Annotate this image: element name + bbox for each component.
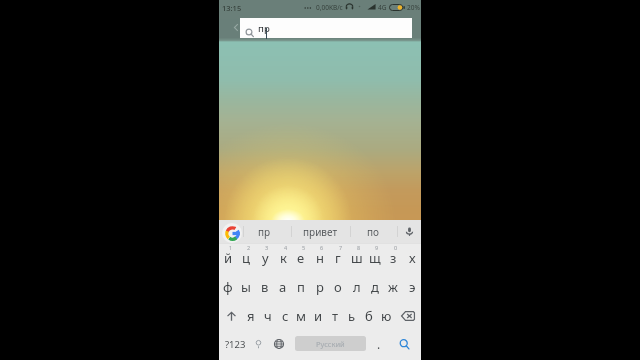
staticText: р: [316, 278, 324, 296]
staticText: к: [280, 249, 287, 267]
button[interactable]: й: [219, 245, 237, 271]
button[interactable]: о: [329, 274, 347, 300]
staticText: ц: [242, 249, 250, 267]
staticText: т: [332, 307, 339, 325]
button[interactable]: ч: [259, 303, 277, 329]
button[interactable]: Shift: [221, 303, 241, 329]
staticText: в: [261, 278, 269, 296]
button[interactable]: ь: [343, 303, 361, 329]
button[interactable]: р: [311, 274, 329, 300]
staticText: привет: [303, 225, 338, 239]
button[interactable]: пр: [244, 220, 284, 244]
button[interactable]: Русский: [295, 336, 366, 351]
staticText: по: [367, 225, 379, 239]
button[interactable]: Voice input: [402, 224, 417, 239]
staticText: 1: [229, 244, 233, 251]
staticText: пр: [258, 22, 270, 35]
button[interactable]: ц: [237, 245, 255, 271]
button[interactable]: г: [329, 245, 347, 271]
button[interactable]: Search: [393, 331, 415, 357]
button[interactable]: Backspace: [397, 303, 419, 329]
staticText: с: [282, 307, 289, 325]
button[interactable]: Back: [227, 19, 244, 36]
button[interactable]: а: [274, 274, 292, 300]
button[interactable]: с: [276, 303, 294, 329]
button[interactable]: т: [326, 303, 344, 329]
button[interactable]: е: [292, 245, 310, 271]
staticText: 3: [265, 244, 269, 251]
staticText: я: [247, 307, 255, 325]
button[interactable]: х: [403, 245, 421, 271]
button[interactable]: э: [403, 274, 421, 300]
button[interactable]: пр: [240, 18, 412, 38]
button[interactable]: и: [309, 303, 327, 329]
button[interactable]: Google: [221, 222, 242, 243]
button[interactable]: н: [311, 245, 329, 271]
button[interactable]: ю: [377, 303, 395, 329]
staticText: ч: [264, 307, 272, 325]
staticText: л: [353, 278, 361, 296]
staticText: 0: [394, 244, 398, 251]
staticText: 4: [284, 244, 288, 251]
staticText: 13:15: [222, 3, 242, 13]
button[interactable]: п: [292, 274, 310, 300]
button[interactable]: з: [384, 245, 402, 271]
staticText: ф: [223, 278, 233, 296]
button[interactable]: б: [360, 303, 378, 329]
staticText: 9: [375, 244, 379, 251]
staticText: 8: [357, 244, 361, 251]
button[interactable]: у: [256, 245, 274, 271]
button[interactable]: по: [353, 220, 393, 244]
staticText: й: [224, 249, 233, 267]
staticText: п: [297, 278, 305, 296]
staticText: г: [335, 249, 341, 267]
staticText: ь: [348, 307, 356, 325]
staticText: н: [316, 249, 324, 267]
staticText: б: [365, 307, 373, 325]
staticText: 7: [339, 244, 343, 251]
staticText: .: [377, 336, 381, 352]
staticText: 0,00KB/c: [316, 3, 343, 12]
button[interactable]: Change language: [270, 331, 288, 357]
staticText: ж: [388, 278, 398, 296]
button[interactable]: .: [370, 331, 388, 357]
staticText: м: [296, 307, 306, 325]
button[interactable]: ш: [348, 245, 366, 271]
button[interactable]: м: [292, 303, 310, 329]
staticText: Русский: [316, 339, 345, 349]
staticText: ш: [351, 249, 363, 267]
button[interactable]: к: [274, 245, 292, 271]
staticText: 20%: [407, 3, 420, 12]
staticText: д: [371, 278, 379, 296]
staticText: пр: [258, 225, 271, 239]
staticText: 2: [247, 244, 251, 251]
staticText: ю: [381, 307, 392, 325]
button[interactable]: щ: [366, 245, 384, 271]
button[interactable]: в: [256, 274, 274, 300]
staticText: 5: [302, 244, 306, 251]
staticText: 4G: [378, 3, 387, 12]
staticText: щ: [369, 249, 381, 267]
button[interactable]: привет: [295, 220, 345, 244]
button[interactable]: ы: [237, 274, 255, 300]
button[interactable]: д: [366, 274, 384, 300]
staticText: а: [279, 278, 287, 296]
staticText: э: [409, 278, 416, 296]
button[interactable]: Emoji: [249, 331, 267, 357]
button[interactable]: ж: [384, 274, 402, 300]
staticText: ы: [241, 278, 251, 296]
staticText: у: [262, 249, 269, 267]
staticText: е: [297, 249, 305, 267]
staticText: и: [314, 307, 323, 325]
staticText: ?123: [225, 338, 246, 351]
staticText: х: [409, 249, 416, 267]
button[interactable]: ?123: [222, 331, 248, 357]
staticText: з: [390, 249, 397, 267]
staticText: 6: [320, 244, 324, 251]
button[interactable]: я: [242, 303, 260, 329]
button[interactable]: л: [348, 274, 366, 300]
button[interactable]: ф: [219, 274, 237, 300]
staticText: о: [334, 278, 342, 296]
